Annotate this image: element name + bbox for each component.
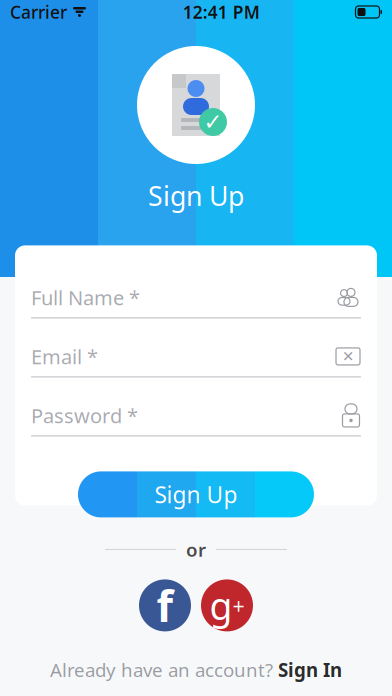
staticText: + (232, 591, 244, 619)
staticText: ✕ (342, 348, 354, 365)
button[interactable]: Already have an account? (50, 657, 342, 682)
staticText: ✓ (203, 109, 222, 135)
staticText: g (209, 581, 232, 630)
staticText: Carrier (10, 0, 67, 23)
button[interactable]: Full Name * (15, 285, 377, 318)
staticText: Sign Up (148, 178, 244, 213)
staticText: Password * (31, 402, 138, 429)
staticText: or (186, 537, 206, 562)
button[interactable]: Sign up with Google Plus (201, 579, 253, 631)
staticText: f (156, 577, 173, 634)
staticText: Already have an account? (50, 657, 273, 682)
staticText: 12:41 PM (183, 0, 260, 23)
staticText: Sign In (278, 657, 342, 682)
staticText: Sign Up (154, 479, 237, 509)
button[interactable]: Password * (15, 403, 377, 436)
staticText: Full Name * (31, 284, 140, 311)
button[interactable]: Email * (15, 344, 377, 377)
button[interactable]: Sign Up (78, 471, 314, 517)
button[interactable]: Sign up with Facebook (139, 579, 191, 631)
staticText: Email * (31, 343, 98, 370)
